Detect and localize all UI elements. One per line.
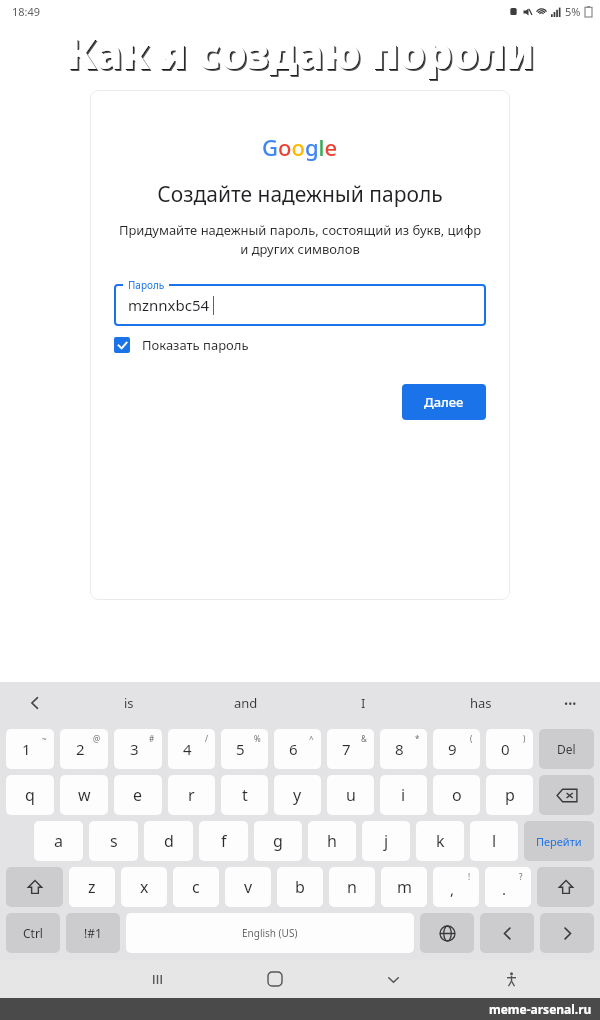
- button[interactable]: Hide keyboard: [334, 960, 452, 998]
- staticText: o: [452, 784, 462, 806]
- button[interactable]: has: [422, 682, 540, 724]
- staticText: h: [327, 830, 337, 852]
- staticText: mznnxbc54: [128, 295, 210, 315]
- staticText: x: [140, 876, 149, 898]
- button[interactable]: r: [168, 775, 215, 815]
- staticText: 4: [183, 739, 192, 759]
- staticText: %: [254, 733, 261, 744]
- button[interactable]: z: [69, 867, 115, 907]
- staticText: ?: [519, 871, 523, 882]
- staticText: Как я создаю пороли: [66, 24, 534, 81]
- button[interactable]: j: [362, 821, 410, 861]
- button[interactable]: 4: [168, 729, 215, 769]
- button[interactable]: h: [308, 821, 356, 861]
- staticText: 0: [501, 739, 510, 759]
- button[interactable]: c: [173, 867, 219, 907]
- button[interactable]: Показать пароль: [114, 336, 486, 354]
- button[interactable]: Del: [539, 729, 594, 769]
- button[interactable]: e: [114, 775, 162, 815]
- staticText: Как я создаю пороли: [68, 26, 536, 83]
- button[interactable]: 9: [433, 729, 480, 769]
- button[interactable]: 2: [60, 729, 108, 769]
- button[interactable]: 1: [6, 729, 54, 769]
- button[interactable]: Далее: [402, 384, 486, 420]
- button[interactable]: Change language: [420, 913, 474, 953]
- button[interactable]: w: [60, 775, 108, 815]
- staticText: 5: [236, 739, 245, 759]
- button[interactable]: Next: [540, 913, 594, 953]
- staticText: m: [397, 876, 412, 898]
- staticText: has: [470, 694, 492, 712]
- staticText: Перейти: [536, 834, 582, 849]
- button[interactable]: p: [486, 775, 533, 815]
- button[interactable]: Previous: [480, 913, 534, 953]
- staticText: s: [110, 830, 118, 852]
- button[interactable]: English (US): [126, 913, 414, 953]
- button[interactable]: Shift: [6, 867, 63, 907]
- staticText: and: [234, 694, 258, 712]
- button[interactable]: 0: [486, 729, 533, 769]
- staticText: Del: [557, 741, 576, 757]
- staticText: ~: [42, 733, 47, 744]
- button[interactable]: t: [221, 775, 268, 815]
- staticText: I: [361, 694, 366, 712]
- staticText: English (US): [242, 926, 298, 940]
- button[interactable]: i: [380, 775, 427, 815]
- button[interactable]: ,: [433, 867, 479, 907]
- button[interactable]: x: [121, 867, 167, 907]
- staticText: q: [25, 784, 35, 806]
- button[interactable]: Ctrl: [6, 913, 60, 953]
- staticText: a: [54, 830, 63, 852]
- button[interactable]: and: [187, 682, 304, 724]
- staticText: .: [502, 879, 507, 899]
- staticText: k: [436, 830, 445, 852]
- button[interactable]: 5: [221, 729, 268, 769]
- staticText: u: [346, 784, 356, 806]
- button[interactable]: b: [277, 867, 323, 907]
- button[interactable]: o: [433, 775, 480, 815]
- button[interactable]: 8: [380, 729, 427, 769]
- staticText: meme-arsenal.ru: [489, 1001, 592, 1017]
- button[interactable]: Home: [216, 960, 334, 998]
- button[interactable]: Backspace: [539, 775, 594, 815]
- staticText: t: [242, 784, 248, 806]
- button[interactable]: 7: [327, 729, 374, 769]
- staticText: Google: [262, 132, 338, 162]
- button[interactable]: m: [381, 867, 427, 907]
- button[interactable]: q: [6, 775, 54, 815]
- button[interactable]: 6: [274, 729, 321, 769]
- button[interactable]: a: [34, 821, 83, 861]
- staticText: &: [361, 733, 367, 744]
- button[interactable]: !#1: [66, 913, 120, 953]
- button[interactable]: is: [70, 682, 187, 724]
- button[interactable]: v: [225, 867, 271, 907]
- staticText: !: [468, 871, 471, 882]
- staticText: 2: [76, 739, 85, 759]
- staticText: (: [470, 733, 473, 744]
- button[interactable]: f: [199, 821, 248, 861]
- button[interactable]: 3: [114, 729, 162, 769]
- staticText: v: [244, 876, 253, 898]
- button[interactable]: [114, 284, 486, 326]
- button[interactable]: More options: [540, 682, 600, 724]
- button[interactable]: s: [89, 821, 138, 861]
- staticText: p: [505, 784, 515, 806]
- button[interactable]: Shift: [537, 867, 594, 907]
- button[interactable]: y: [274, 775, 321, 815]
- button[interactable]: g: [254, 821, 302, 861]
- button[interactable]: l: [470, 821, 518, 861]
- button[interactable]: u: [327, 775, 374, 815]
- button[interactable]: d: [144, 821, 193, 861]
- staticText: Создайте надежный пароль: [157, 180, 443, 209]
- button[interactable]: n: [329, 867, 375, 907]
- button[interactable]: Previous suggestions: [0, 682, 70, 724]
- button[interactable]: Accessibility: [452, 960, 570, 998]
- button[interactable]: .: [485, 867, 531, 907]
- button[interactable]: I: [304, 682, 422, 724]
- staticText: is: [124, 694, 134, 712]
- staticText: c: [192, 876, 200, 898]
- staticText: f: [221, 830, 227, 852]
- button[interactable]: Recent apps: [98, 960, 216, 998]
- button[interactable]: k: [416, 821, 464, 861]
- button[interactable]: Перейти: [524, 821, 594, 861]
